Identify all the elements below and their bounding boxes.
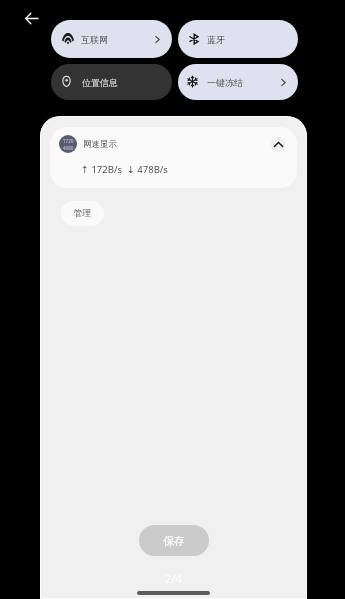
staticText: 一键冻结 bbox=[207, 77, 243, 88]
button[interactable]: 蓝牙 bbox=[178, 20, 298, 58]
staticText: 网速显示 bbox=[83, 139, 117, 150]
staticText: 2/4 bbox=[165, 571, 182, 586]
staticText: 位置信息 bbox=[82, 77, 118, 88]
button[interactable]: 互联网 bbox=[51, 20, 172, 58]
button[interactable]: 一键冻结 bbox=[178, 64, 298, 100]
button[interactable]: 管理 bbox=[61, 201, 104, 226]
button[interactable]: 保存 bbox=[139, 525, 209, 556]
button[interactable]: 位置信息 bbox=[51, 64, 172, 100]
staticText: 互联网 bbox=[81, 34, 108, 45]
staticText: 1720 bbox=[63, 138, 74, 144]
staticText: 4980 bbox=[63, 145, 74, 151]
staticText: 管理 bbox=[74, 208, 91, 219]
staticText: 蓝牙 bbox=[207, 34, 225, 45]
staticText: ↑ 172B/s ↓ 478B/s bbox=[81, 163, 168, 176]
button[interactable]: Back bbox=[19, 6, 43, 30]
staticText: 保存 bbox=[163, 534, 185, 548]
button[interactable]: Collapse bbox=[271, 137, 286, 152]
